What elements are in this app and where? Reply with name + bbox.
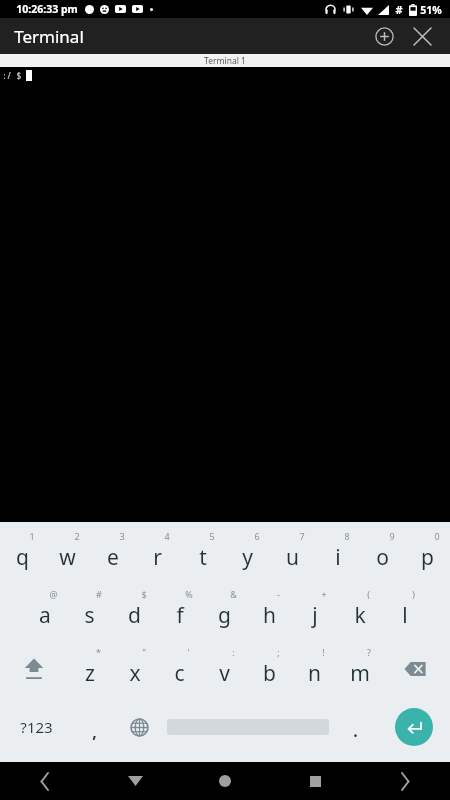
button[interactable]: Shift <box>0 640 67 698</box>
button[interactable]: Enter <box>378 698 450 756</box>
button[interactable]: , <box>72 698 117 756</box>
button[interactable]: a <box>22 582 67 640</box>
staticText: ) <box>412 588 415 600</box>
button[interactable]: l <box>382 582 427 640</box>
button[interactable]: u <box>270 524 315 582</box>
staticText: i <box>335 543 341 572</box>
button[interactable]: x <box>112 640 157 698</box>
button[interactable]: b <box>247 640 292 698</box>
staticText: " <box>142 646 146 658</box>
staticText: t <box>199 543 207 572</box>
button[interactable]: q <box>0 524 45 582</box>
button[interactable]: d <box>112 582 157 640</box>
button[interactable]: v <box>202 640 247 698</box>
staticText: . <box>353 720 358 742</box>
staticText: h <box>263 601 276 630</box>
staticText: 4 <box>164 530 170 542</box>
button[interactable]: m <box>337 640 382 698</box>
button[interactable]: i <box>315 524 360 582</box>
staticText: 10:26:33 pm <box>16 2 78 16</box>
button[interactable]: n <box>292 640 337 698</box>
button[interactable]: Hide keyboard <box>90 762 180 800</box>
button[interactable]: Close <box>406 20 438 52</box>
staticText: ; <box>277 646 280 658</box>
staticText: u <box>286 543 299 572</box>
button[interactable]: t <box>180 524 225 582</box>
staticText: 9 <box>389 530 395 542</box>
staticText: 8 <box>344 530 350 542</box>
staticText: a <box>39 601 51 630</box>
button[interactable]: Forward <box>360 762 450 800</box>
staticText: ( <box>367 588 370 600</box>
button[interactable]: ?123 <box>0 698 72 756</box>
staticText: 0 <box>434 530 440 542</box>
staticText: f <box>176 601 184 630</box>
button[interactable]: Change language <box>117 698 162 756</box>
staticText: d <box>128 601 141 630</box>
staticText: ? <box>367 646 371 658</box>
button[interactable]: Space <box>162 698 333 756</box>
staticText: v <box>219 659 230 688</box>
staticText: j <box>312 601 318 630</box>
staticText: s <box>84 601 95 630</box>
staticText: k <box>354 601 366 630</box>
button[interactable]: e <box>90 524 135 582</box>
staticText: + <box>321 588 327 600</box>
button[interactable]: p <box>405 524 450 582</box>
button[interactable]: Recents <box>270 762 360 800</box>
staticText: :/ $ <box>2 70 26 81</box>
button[interactable]: . <box>333 698 378 756</box>
button[interactable]: z <box>67 640 112 698</box>
button[interactable]: f <box>157 582 202 640</box>
staticText: w <box>59 543 76 572</box>
staticText: ' <box>187 646 190 658</box>
staticText: l <box>402 601 408 630</box>
staticText: $ <box>141 588 147 600</box>
staticText: c <box>174 659 185 688</box>
staticText: z <box>85 659 95 688</box>
staticText: 3 <box>119 530 125 542</box>
staticText: Terminal 1 <box>204 55 246 67</box>
staticText: n <box>308 659 321 688</box>
staticText: m <box>350 659 370 688</box>
staticText: ! <box>322 646 325 658</box>
button[interactable]: o <box>360 524 405 582</box>
staticText: 1 <box>29 530 35 542</box>
button[interactable]: New terminal <box>368 20 400 52</box>
button[interactable]: g <box>202 582 247 640</box>
button[interactable]: Terminal <box>12 21 86 52</box>
staticText: * <box>96 646 101 658</box>
button[interactable]: j <box>292 582 337 640</box>
button[interactable]: y <box>225 524 270 582</box>
staticText: ?123 <box>20 717 53 737</box>
staticText: 2 <box>74 530 80 542</box>
button[interactable]: s <box>67 582 112 640</box>
button[interactable]: :/ $ <box>0 67 450 522</box>
button[interactable]: Terminal 1 <box>0 54 450 67</box>
staticText: e <box>107 543 119 572</box>
staticText: q <box>16 543 29 572</box>
button[interactable]: k <box>337 582 382 640</box>
button[interactable]: Back <box>0 762 90 800</box>
button[interactable]: r <box>135 524 180 582</box>
staticText: # <box>395 2 403 17</box>
button[interactable]: c <box>157 640 202 698</box>
staticText: # <box>96 588 102 600</box>
button[interactable]: Backspace <box>382 640 450 698</box>
staticText: 6 <box>254 530 260 542</box>
staticText: 5 <box>209 530 215 542</box>
staticText: 51% <box>420 3 442 17</box>
button[interactable]: w <box>45 524 90 582</box>
button[interactable]: h <box>247 582 292 640</box>
staticText: 7 <box>299 530 305 542</box>
staticText: p <box>421 543 434 572</box>
staticText: , <box>92 721 97 743</box>
staticText: g <box>218 601 231 630</box>
staticText: @ <box>49 588 58 600</box>
staticText: & <box>230 588 237 600</box>
staticText: r <box>153 543 162 572</box>
staticText: o <box>376 543 389 572</box>
staticText: - <box>277 588 280 600</box>
button[interactable]: Home <box>180 762 270 800</box>
staticText: % <box>185 588 193 600</box>
